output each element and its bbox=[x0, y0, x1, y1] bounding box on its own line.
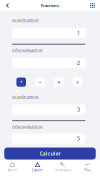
staticText: Plus bbox=[84, 168, 90, 172]
staticText: Fractions bbox=[41, 3, 59, 8]
button[interactable]: Retour bbox=[2, 0, 13, 11]
button[interactable]: Accueil bbox=[0, 160, 25, 174]
button[interactable]: Calculer bbox=[25, 160, 50, 174]
button[interactable]: Plus bbox=[75, 160, 100, 174]
button[interactable]: + bbox=[16, 77, 26, 87]
staticText: Calculer bbox=[39, 150, 60, 157]
button[interactable]: Calculer bbox=[4, 147, 96, 159]
staticText: DÉNOMINATEUR bbox=[12, 125, 43, 130]
staticText: ÷ bbox=[76, 79, 79, 86]
staticText: × bbox=[57, 79, 60, 86]
staticText: 5 bbox=[77, 135, 80, 142]
staticText: − bbox=[38, 79, 41, 86]
staticText: DÉNOMINATEUR bbox=[12, 48, 43, 53]
staticText: 1 bbox=[77, 29, 80, 37]
staticText: 2 bbox=[77, 59, 80, 67]
staticText: 3 bbox=[77, 106, 80, 113]
staticText: Conversions bbox=[54, 168, 71, 172]
staticText: + bbox=[20, 79, 23, 86]
button[interactable]: ÷ bbox=[73, 77, 82, 87]
button[interactable]: Historique bbox=[87, 0, 98, 11]
button[interactable]: − bbox=[35, 77, 45, 87]
button[interactable]: Conversions bbox=[50, 160, 75, 174]
staticText: Accueil bbox=[7, 168, 17, 172]
button[interactable]: × bbox=[54, 77, 64, 87]
staticText: NUMÉRATEUR bbox=[12, 95, 39, 100]
staticText: NUMÉRATEUR bbox=[12, 18, 39, 23]
staticText: Calculer bbox=[32, 168, 43, 172]
